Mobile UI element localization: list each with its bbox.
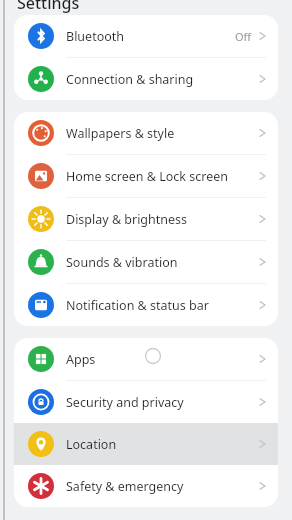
staticText: Off <box>235 29 252 44</box>
staticText: Location <box>66 436 259 453</box>
other: Notification and status bar <box>28 292 54 318</box>
button[interactable]: Connection and sharing <box>14 58 278 100</box>
other: Apps <box>28 346 54 372</box>
button[interactable]: Home screen and Lock screen <box>14 155 278 198</box>
button[interactable]: Display and brightness <box>14 198 278 241</box>
other: Location <box>28 431 54 457</box>
button[interactable]: Safety and emergency <box>14 465 278 507</box>
staticText: Security and privacy <box>66 394 259 411</box>
other: Security and privacy <box>28 389 54 415</box>
button[interactable]: Security and privacy <box>14 381 278 423</box>
button[interactable]: Sounds and vibration <box>14 241 278 284</box>
other: Wallpapers and style <box>28 120 54 146</box>
button[interactable]: Apps <box>14 338 278 381</box>
other: Safety and emergency <box>28 473 54 499</box>
staticText: Home screen & Lock screen <box>66 168 259 185</box>
staticText: Connection & sharing <box>66 71 259 88</box>
other: Bluetooth <box>28 23 54 49</box>
staticText: Display & brightness <box>66 211 259 228</box>
staticText: Notification & status bar <box>66 297 259 314</box>
other: Display and brightness <box>28 206 54 232</box>
other: Home screen and Lock screen <box>28 163 54 189</box>
button[interactable]: Wallpapers and style <box>14 112 278 155</box>
staticText: Bluetooth <box>66 28 235 45</box>
staticText: Wallpapers & style <box>66 125 259 142</box>
staticText: Settings <box>17 0 80 14</box>
staticText: Sounds & vibration <box>66 254 259 271</box>
other: Connection and sharing <box>28 66 54 92</box>
staticText: Apps <box>66 351 259 368</box>
button[interactable]: Bluetooth <box>14 15 278 58</box>
staticText: Safety & emergency <box>66 478 259 495</box>
other: Sounds and vibration <box>28 249 54 275</box>
button[interactable]: Notification and status bar <box>14 284 278 326</box>
button[interactable]: Location <box>14 423 278 465</box>
